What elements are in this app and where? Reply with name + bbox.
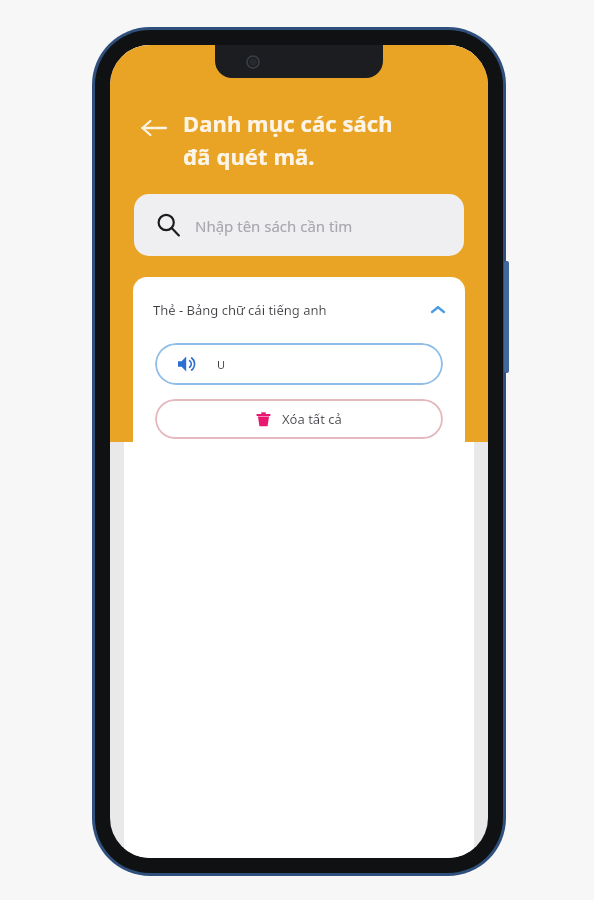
button[interactable]: Nhập tên sách cần tìm <box>134 194 464 256</box>
staticText: Nhập tên sách cần tìm <box>195 216 353 236</box>
button[interactable]: Back <box>138 112 170 144</box>
staticText: đã quét mã. <box>183 141 315 171</box>
button[interactable]: U <box>155 343 443 385</box>
staticText: Thẻ - Bảng chữ cái tiếng anh <box>153 301 327 319</box>
button[interactable]: Thẻ - Bảng chữ cái tiếng anh <box>133 277 465 327</box>
staticText: Xóa tất cả <box>282 410 342 428</box>
staticText: U <box>217 357 226 372</box>
button[interactable]: Xóa tất cả <box>155 399 443 439</box>
staticText: Danh mục các sách <box>183 108 393 138</box>
